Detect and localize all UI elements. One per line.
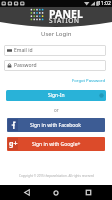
button[interactable]: Sign in with Google+ bbox=[7, 137, 105, 151]
button[interactable]: Back bbox=[19, 185, 35, 200]
staticText: g+ bbox=[9, 139, 18, 149]
staticText: or bbox=[54, 107, 59, 113]
button[interactable]: Sign-In bbox=[6, 90, 106, 101]
staticText: 11:02 bbox=[98, 0, 111, 7]
button[interactable]: Recents bbox=[80, 185, 96, 200]
button[interactable]: Home bbox=[48, 185, 64, 200]
staticText: Sign-In bbox=[48, 92, 65, 99]
button[interactable]: Sign in with Facebook bbox=[7, 118, 105, 132]
staticText: User Login bbox=[41, 30, 72, 38]
button[interactable]: Forgot Password bbox=[72, 78, 112, 84]
staticText: STATION bbox=[49, 16, 80, 25]
staticText: Email id bbox=[14, 47, 33, 54]
button[interactable]: Email id bbox=[4, 45, 106, 56]
staticText: Password bbox=[14, 62, 37, 69]
staticText: Copyright © 2015 thepanelstation. All ri… bbox=[19, 174, 94, 178]
staticText: Sign in with Facebook bbox=[30, 122, 82, 129]
staticText: PANEL bbox=[49, 7, 84, 21]
button[interactable]: Password bbox=[4, 60, 106, 71]
staticText: Sign in with Google+ bbox=[32, 141, 81, 148]
